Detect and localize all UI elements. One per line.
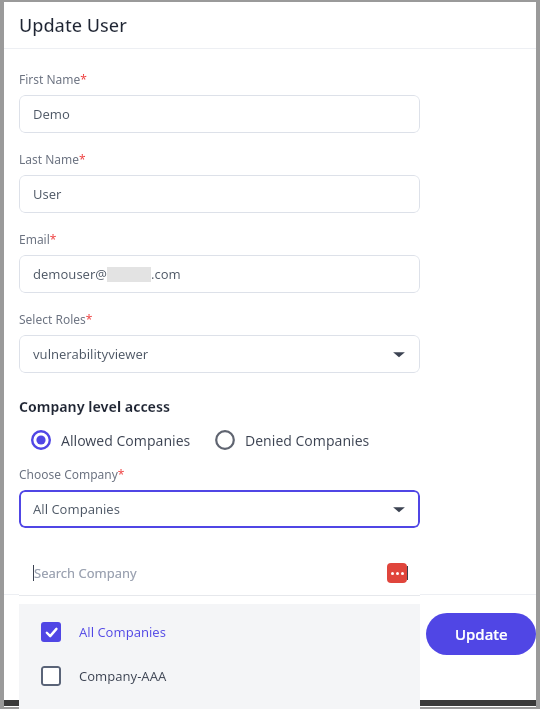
staticText: .com (151, 265, 181, 283)
staticText: Update (455, 624, 508, 644)
button[interactable]: vulnerabilityviewer (19, 335, 420, 373)
staticText: Company-AAA (79, 667, 167, 685)
staticText: First Name* (19, 71, 87, 87)
staticText: User (33, 185, 62, 203)
staticText: Denied Companies (245, 431, 370, 450)
staticText: Last Name* (19, 151, 86, 167)
button[interactable]: All Companies (19, 490, 420, 528)
staticText: vulnerabilityviewer (33, 345, 149, 363)
button[interactable]: User (19, 175, 420, 213)
button[interactable]: All Companies (19, 614, 420, 650)
button[interactable]: Denied Companies (213, 426, 372, 454)
button[interactable]: demouser@ (19, 255, 420, 293)
staticText: Demo (33, 105, 70, 123)
staticText: Company level access (19, 397, 171, 416)
staticText: Update User (19, 13, 127, 38)
button[interactable]: Update (426, 613, 536, 655)
button[interactable]: Company-AAA (19, 658, 420, 694)
staticText: demouser@ (33, 265, 107, 283)
button[interactable]: Demo (19, 95, 420, 133)
staticText: All Companies (79, 623, 166, 641)
button[interactable]: Allowed Companies (29, 426, 193, 454)
staticText: Choose Company* (19, 466, 125, 482)
staticText: Allowed Companies (61, 431, 191, 450)
staticText: All Companies (33, 500, 120, 518)
staticText: Search Company (34, 564, 137, 582)
staticText: Select Roles* (19, 311, 93, 327)
button[interactable]: More options (387, 563, 407, 583)
staticText: Email* (19, 231, 57, 247)
